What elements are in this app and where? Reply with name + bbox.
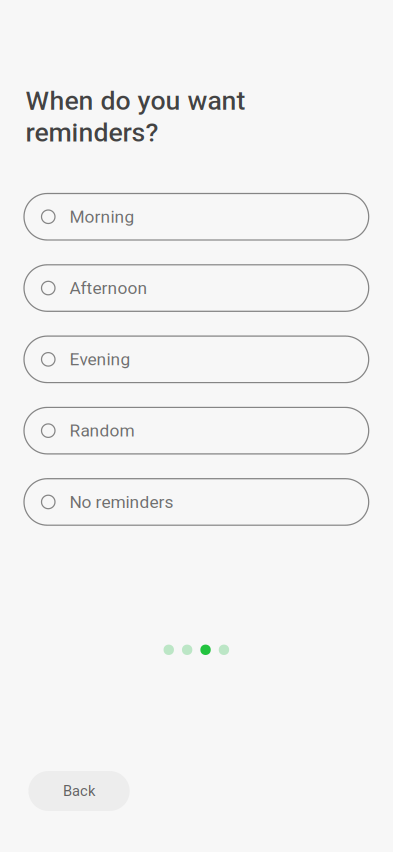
button[interactable]: Random [24, 407, 369, 454]
staticText: Random [69, 420, 134, 441]
staticText: Evening [69, 349, 130, 369]
staticText: No reminders [69, 492, 173, 512]
staticText: Back [63, 782, 95, 800]
staticText: Afternoon [69, 278, 147, 298]
staticText: reminders? [25, 117, 158, 148]
button[interactable]: Morning [24, 193, 369, 240]
button[interactable]: No reminders [24, 479, 369, 525]
staticText: When do you want [25, 85, 245, 116]
staticText: Morning [69, 207, 134, 227]
button[interactable]: Back [28, 771, 130, 811]
button[interactable]: Evening [24, 336, 369, 383]
button[interactable]: Afternoon [24, 265, 369, 311]
